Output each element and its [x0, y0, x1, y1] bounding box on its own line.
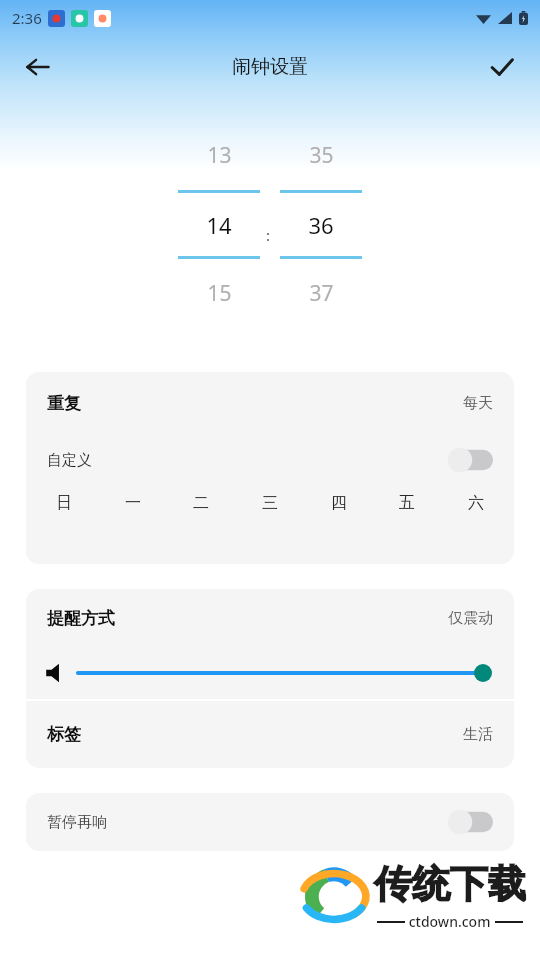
button[interactable]: 暂停再响	[26, 793, 514, 851]
button[interactable]: Toggle	[447, 809, 493, 835]
staticText: 四	[331, 493, 347, 513]
staticText: 三	[262, 493, 278, 513]
button[interactable]: 六	[456, 486, 496, 520]
staticText: 14	[206, 210, 232, 240]
button[interactable]: 三	[250, 486, 290, 520]
staticText: :	[266, 225, 271, 245]
button[interactable]: 一	[113, 486, 153, 520]
staticText: ctdown.com	[405, 912, 495, 931]
button[interactable]: 重复	[26, 372, 514, 434]
staticText: 标签	[47, 724, 81, 745]
button[interactable]: Back	[14, 43, 62, 91]
button[interactable]: Confirm	[478, 43, 526, 91]
staticText: 自定义	[47, 451, 92, 470]
button[interactable]: 13	[178, 120, 260, 327]
staticText: 日	[56, 493, 72, 513]
button[interactable]: 五	[387, 486, 427, 520]
staticText: 仅震动	[448, 609, 493, 628]
staticText: 传统下载	[374, 860, 526, 908]
staticText: 36	[308, 210, 334, 240]
button[interactable]: 二	[181, 486, 221, 520]
button[interactable]: 标签	[26, 701, 514, 768]
staticText: 二	[193, 493, 209, 513]
staticText: 五	[399, 493, 415, 513]
button[interactable]: 提醒方式	[26, 589, 514, 699]
button[interactable]: 自定义	[26, 434, 514, 486]
staticText: 35	[309, 141, 334, 170]
staticText: 提醒方式	[47, 608, 115, 629]
button[interactable]: 日	[44, 486, 84, 520]
staticText: 六	[468, 493, 484, 513]
other: Volume	[44, 662, 66, 684]
staticText: 每天	[463, 394, 493, 413]
button[interactable]	[78, 662, 492, 684]
button[interactable]: 四	[319, 486, 359, 520]
staticText: 一	[125, 493, 141, 513]
staticText: 生活	[463, 725, 493, 744]
staticText: 13	[207, 141, 232, 170]
staticText: 2:36	[12, 8, 42, 28]
button[interactable]: Toggle	[447, 447, 493, 473]
staticText: 重复	[47, 393, 81, 414]
staticText: 闹钟设置	[232, 55, 308, 79]
staticText: 37	[309, 279, 334, 308]
staticText: 15	[207, 279, 232, 308]
staticText: 暂停再响	[47, 813, 107, 832]
button[interactable]: 35	[280, 120, 362, 327]
